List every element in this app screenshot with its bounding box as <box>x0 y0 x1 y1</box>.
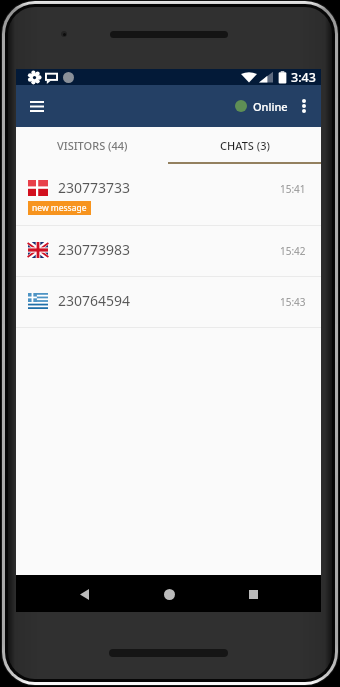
button[interactable]: Recents <box>236 577 270 611</box>
staticText: new message <box>32 202 87 214</box>
staticText: CHATS (3) <box>220 138 270 153</box>
staticText: 15:42 <box>280 244 306 258</box>
staticText: 230773733 <box>58 178 131 196</box>
button[interactable]: More options <box>290 87 318 125</box>
button[interactable]: 230773733 <box>16 164 321 225</box>
button[interactable]: 230773983 <box>16 226 321 276</box>
button[interactable]: VISITORS (44) <box>16 127 168 164</box>
button[interactable]: Home <box>152 577 186 611</box>
button[interactable]: Back <box>67 577 101 611</box>
button[interactable]: Menu <box>18 87 56 125</box>
button[interactable]: Online <box>229 87 294 125</box>
staticText: 230773983 <box>58 240 131 258</box>
button[interactable]: CHATS (3) <box>168 127 321 164</box>
staticText: 230764594 <box>58 291 131 309</box>
staticText: VISITORS (44) <box>57 138 128 153</box>
staticText: Online <box>253 99 288 114</box>
staticText: 3:43 <box>291 69 316 85</box>
button[interactable]: 230764594 <box>16 277 321 327</box>
staticText: 15:43 <box>280 295 306 309</box>
staticText: 15:41 <box>280 182 306 196</box>
